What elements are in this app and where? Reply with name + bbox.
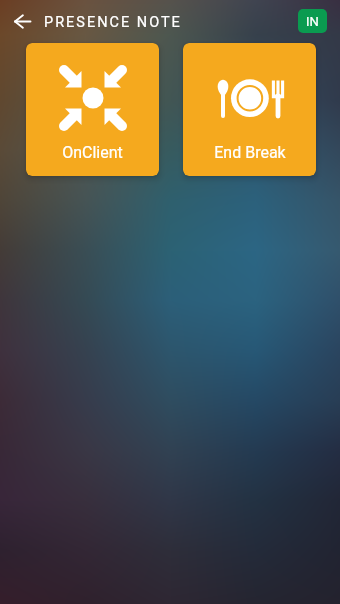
staticText: OnClient: [62, 143, 123, 162]
staticText: End Break: [214, 143, 286, 162]
staticText: IN: [306, 14, 319, 29]
staticText: PRESENCE NOTE: [44, 14, 182, 31]
button[interactable]: IN: [298, 9, 327, 33]
button[interactable]: Back: [6, 5, 38, 37]
button[interactable]: End Break: [183, 43, 316, 176]
button[interactable]: OnClient: [26, 43, 159, 176]
